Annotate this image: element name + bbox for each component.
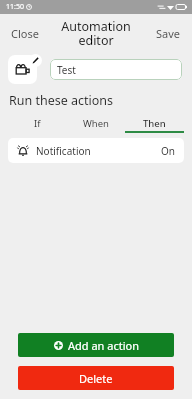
button[interactable]: Notification <box>8 138 184 163</box>
button[interactable]: Close <box>0 20 50 47</box>
button[interactable]: Edit <box>29 54 42 67</box>
button[interactable]: When <box>66 114 125 133</box>
staticText: Notification <box>36 144 91 158</box>
button[interactable]: Test <box>50 59 182 80</box>
staticText: Save <box>156 26 181 41</box>
staticText: When <box>83 117 109 130</box>
staticText: Close <box>11 26 39 41</box>
staticText: 11:50 <box>6 2 24 12</box>
staticText: On <box>161 144 175 158</box>
staticText: Test <box>57 63 76 77</box>
staticText: Automation editor <box>54 18 138 49</box>
button[interactable]: If <box>8 114 66 133</box>
button[interactable]: Delete <box>18 366 174 390</box>
staticText: Run these actions <box>9 92 114 109</box>
button[interactable]: Then <box>125 114 184 133</box>
staticText: Delete <box>79 371 113 386</box>
staticText: Add an action <box>68 338 139 353</box>
staticText: If <box>34 117 41 130</box>
button[interactable]: Add an action <box>18 333 174 357</box>
button[interactable]: Save <box>145 20 192 47</box>
staticText: Then <box>143 117 166 130</box>
button[interactable]: Change icon <box>8 55 37 84</box>
